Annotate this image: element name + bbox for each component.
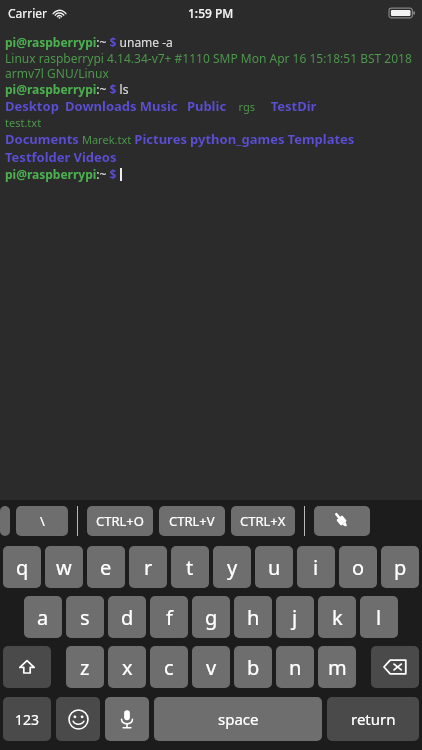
staticText: p [394,554,407,581]
staticText: \ [40,512,45,530]
staticText: CTRL+X [240,512,286,530]
button[interactable]: v [192,646,230,688]
button[interactable]: h [234,596,272,638]
button[interactable]: Tab [0,506,10,536]
staticText: Documents Marek.txt Pictures python_game… [5,130,418,148]
button[interactable]: a [24,596,62,638]
staticText: j [292,604,298,631]
staticText: n [289,654,302,681]
button[interactable]: p [381,546,419,588]
button[interactable]: Backspace [371,646,419,688]
button[interactable]: f [150,596,188,638]
button[interactable]: y [213,546,251,588]
staticText: 123 [15,710,40,729]
button[interactable]: g [192,596,230,638]
button[interactable]: Emoji [56,697,100,741]
staticText: x [122,654,133,681]
staticText: pi@raspberrypi:~ $ [5,166,120,182]
staticText: pi@raspberrypi:~ $ ls [5,81,418,97]
staticText: k [332,604,343,631]
button[interactable]: CTRL+O [87,506,153,536]
staticText: d [121,604,134,631]
staticText: e [100,554,112,581]
button[interactable]: space [154,697,322,741]
staticText: y [227,554,238,581]
staticText: w [56,554,72,581]
button[interactable]: u [255,546,293,588]
button[interactable]: Dictation [105,697,149,741]
staticText: test.txt [5,115,418,130]
button[interactable]: c [150,646,188,688]
button[interactable]: i [297,546,335,588]
button[interactable]: return [327,697,419,741]
button[interactable]: e [87,546,125,588]
button[interactable]: CTRL+X [231,506,295,536]
button[interactable]: x [108,646,146,688]
staticText: Linux raspberrypi 4.14.34-v7+ #1110 SMP … [5,50,418,81]
staticText: l [376,604,382,631]
staticText: Carrier [8,5,48,21]
staticText: c [164,654,174,681]
button[interactable]: z [66,646,104,688]
button[interactable]: k [318,596,356,638]
button[interactable]: 123 [3,697,51,741]
staticText: f [166,604,173,631]
staticText: Desktop Downloads Music Public rgs TestD… [5,97,418,115]
button[interactable]: w [45,546,83,588]
staticText: space [218,709,259,729]
staticText: s [80,604,90,631]
staticText: pi@raspberrypi:~ $ uname -a [5,34,418,50]
button[interactable]: b [234,646,272,688]
button[interactable]: t [171,546,209,588]
staticText: q [16,554,29,581]
staticText: CTRL+O [96,512,144,530]
staticText: i [313,554,319,581]
staticText: t [186,554,194,581]
staticText: CTRL+V [169,512,215,530]
staticText: m [328,654,347,681]
button[interactable]: \ [16,506,68,536]
staticText: g [205,604,218,631]
staticText: r [144,554,153,581]
staticText: u [268,554,281,581]
staticText: o [352,554,365,581]
staticText: Testfolder Videos [5,148,418,166]
staticText: z [80,654,90,681]
button[interactable]: q [3,546,41,588]
staticText: h [247,604,260,631]
staticText: b [247,654,260,681]
button[interactable]: o [339,546,377,588]
button[interactable]: d [108,596,146,638]
staticText: v [206,654,217,681]
staticText: a [37,604,49,631]
button[interactable]: j [276,596,314,638]
button[interactable]: l [360,596,398,638]
button[interactable]: r [129,546,167,588]
button[interactable]: s [66,596,104,638]
staticText: return [351,709,396,729]
button[interactable]: Theme [314,506,370,536]
staticText: 1:59 PM [188,5,234,21]
button[interactable]: m [318,646,356,688]
button[interactable]: CTRL+V [159,506,225,536]
button[interactable]: n [276,646,314,688]
button[interactable]: Shift [3,646,51,688]
